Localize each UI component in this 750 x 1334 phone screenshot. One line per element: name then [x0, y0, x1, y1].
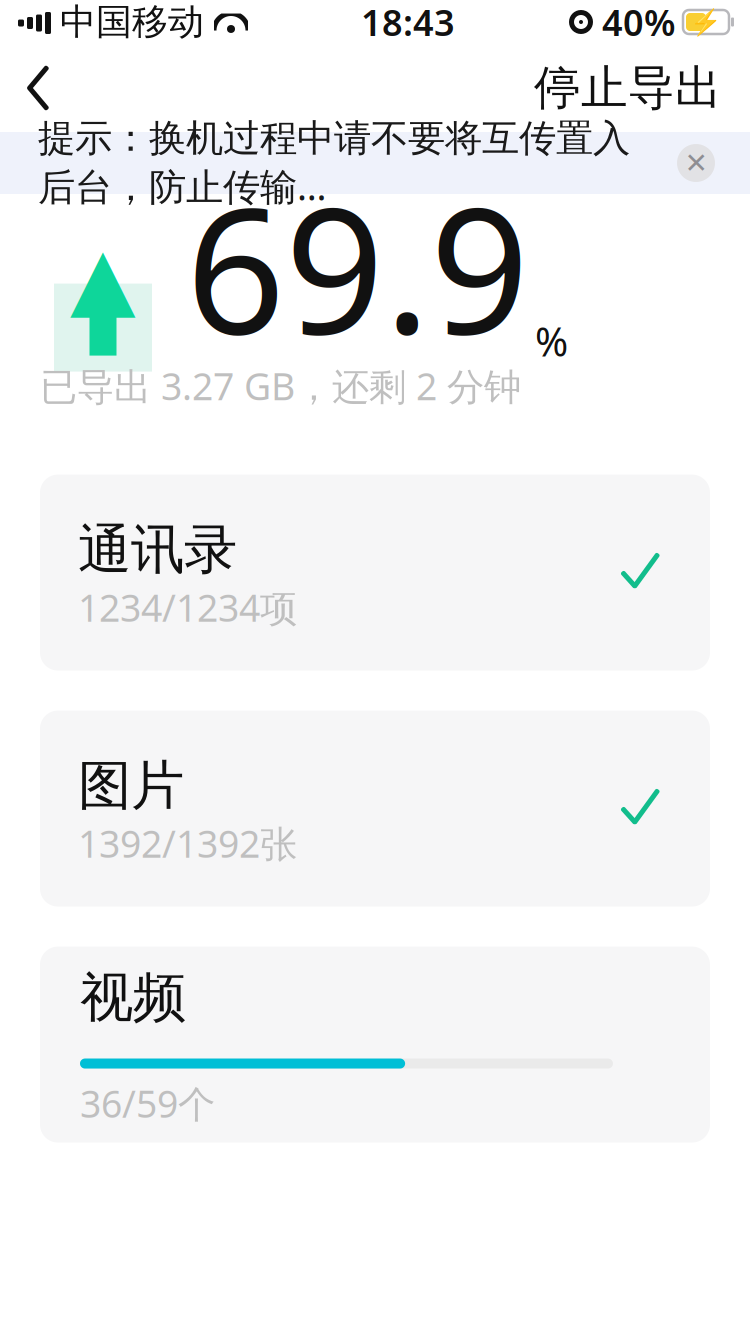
button[interactable]: 停止导出	[516, 37, 740, 139]
button[interactable]: 图片	[40, 711, 710, 907]
staticText: 图片	[78, 753, 184, 818]
staticText: 中国移动	[60, 0, 204, 44]
staticText: ▲	[70, 229, 136, 326]
staticText: 36/59个	[80, 1078, 215, 1128]
staticText: 通讯录	[78, 517, 237, 582]
button[interactable]: 关闭提示	[666, 132, 726, 194]
staticText: 提示：换机过程中请不要将互传置入后台，防止传输…	[38, 115, 630, 211]
staticText: 1234/1234项	[78, 582, 297, 632]
staticText: 已导出 3.27 GB，还剩 2 分钟	[40, 361, 521, 411]
staticText: 视频	[80, 965, 186, 1030]
staticText: 停止导出	[534, 59, 722, 117]
staticText: 18:43	[361, 0, 455, 46]
staticText: ⚡	[690, 7, 722, 36]
staticText: %	[535, 314, 568, 368]
staticText: 69.9	[186, 151, 529, 382]
button[interactable]: 返回	[0, 44, 86, 132]
button[interactable]: 视频	[40, 947, 710, 1143]
staticText: 1392/1392张	[78, 818, 297, 868]
staticText: ✕	[684, 147, 707, 179]
button[interactable]: 通讯录	[40, 475, 710, 671]
staticText: 40%	[602, 0, 676, 46]
